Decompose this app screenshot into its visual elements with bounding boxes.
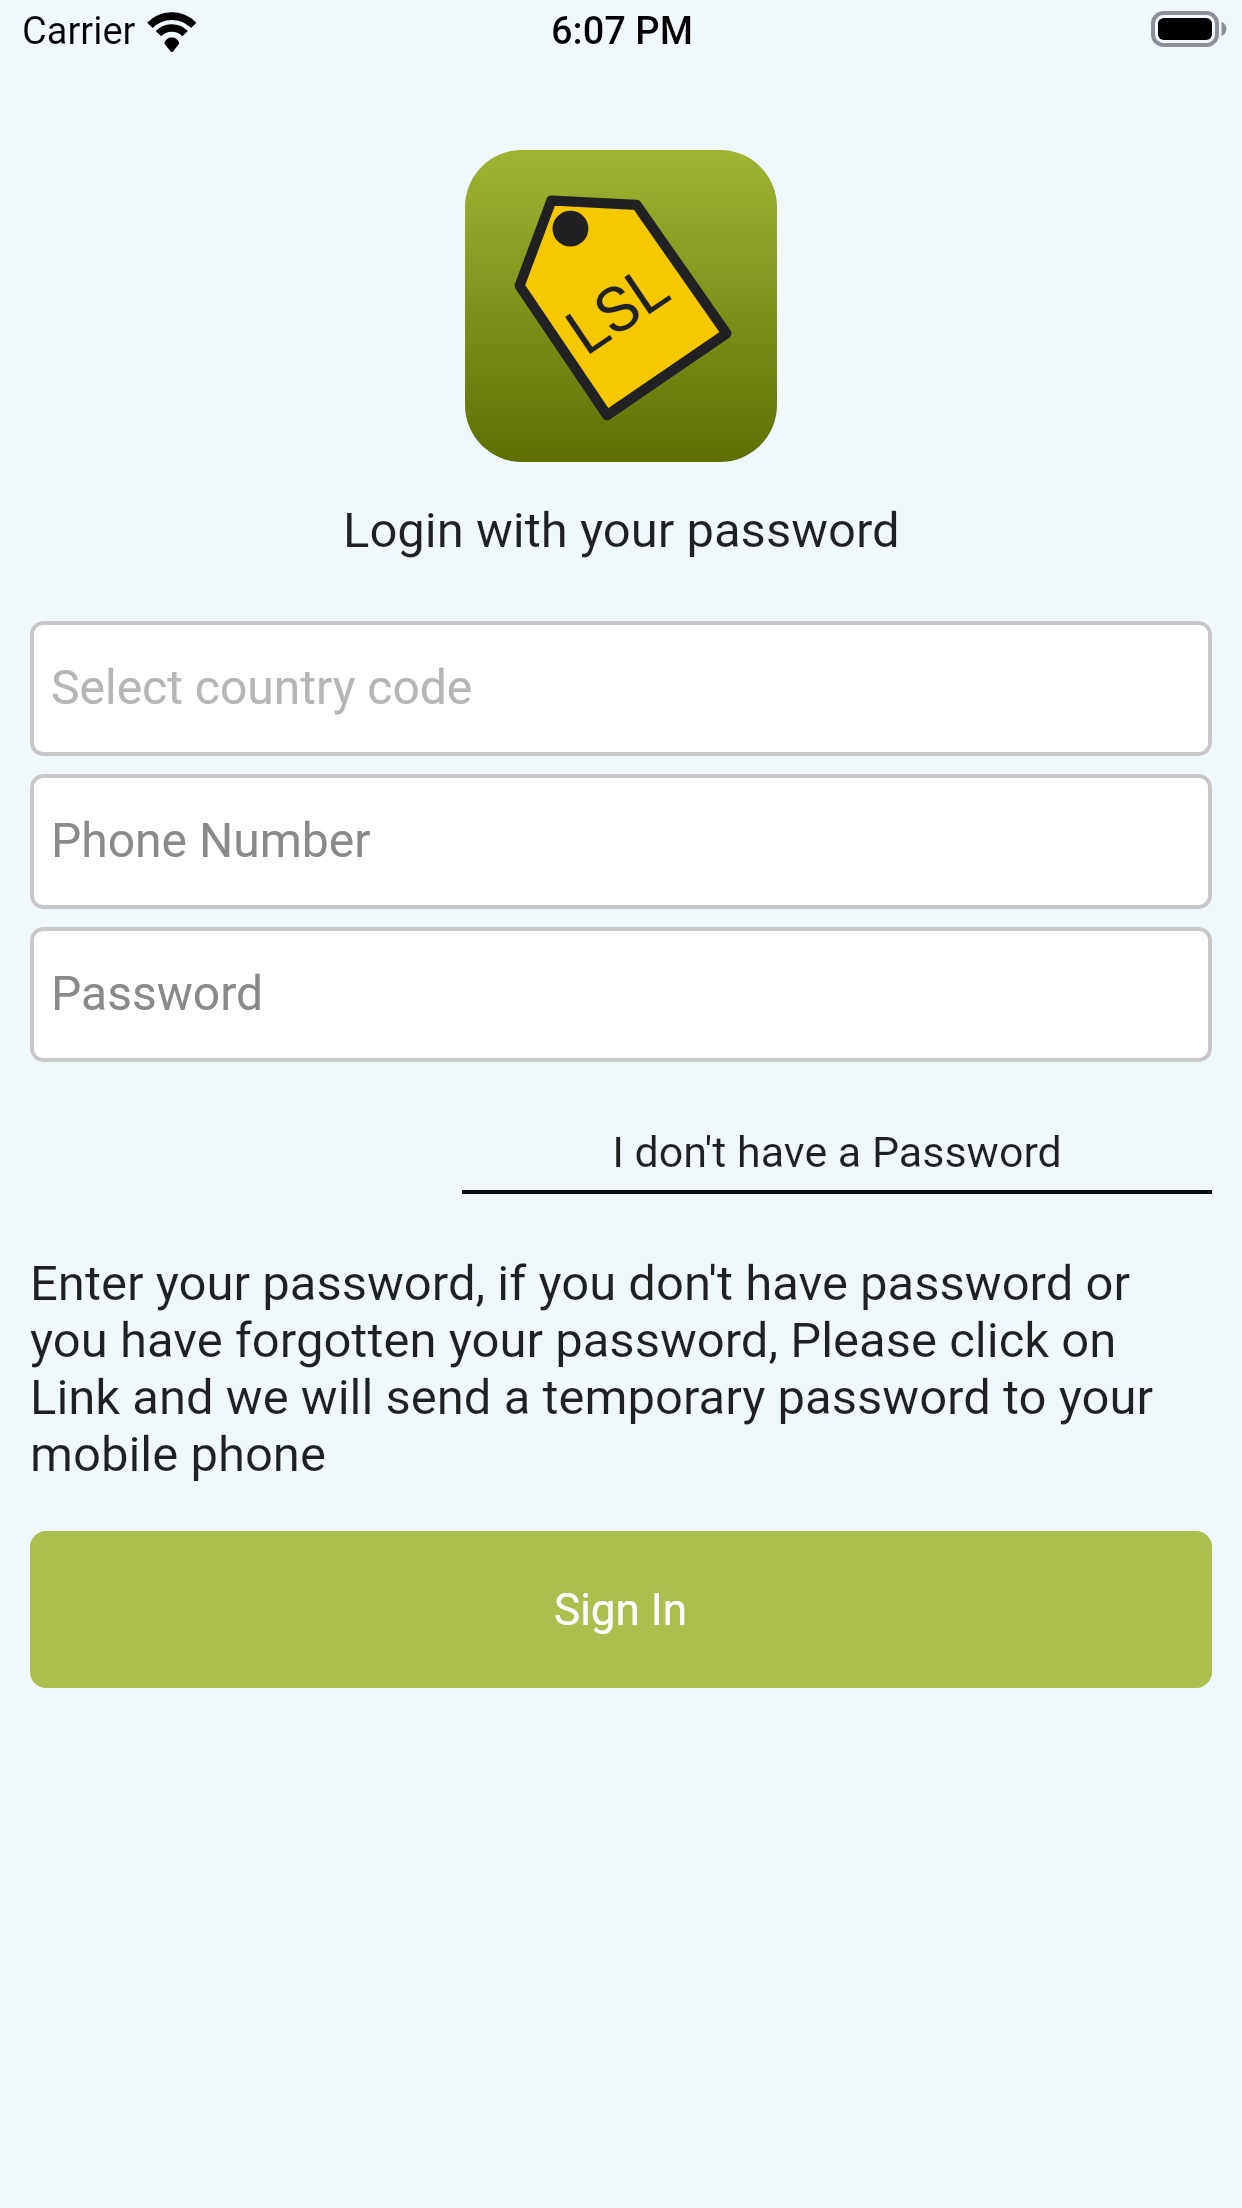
staticText: Sign In: [554, 1584, 688, 1636]
button[interactable]: Sign In: [30, 1531, 1212, 1688]
staticText: I don't have a Password: [462, 1127, 1212, 1177]
staticText: 6:07 PM: [551, 9, 693, 54]
staticText: LSL: [553, 250, 683, 370]
button[interactable]: Password: [30, 927, 1212, 1062]
staticText: Carrier: [22, 9, 136, 54]
other: Battery full: [1151, 11, 1231, 49]
staticText: Password: [51, 965, 264, 1021]
button[interactable]: I don't have a Password: [462, 1127, 1212, 1194]
staticText: Login with your password: [343, 502, 900, 559]
staticText: Select country code: [51, 659, 473, 715]
staticText: Phone Number: [51, 812, 371, 868]
other: Wi-Fi signal: [146, 8, 198, 50]
button[interactable]: Select country code: [30, 621, 1212, 756]
button[interactable]: Phone Number: [30, 774, 1212, 909]
staticText: Enter your password, if you don't have p…: [30, 1255, 1210, 1483]
